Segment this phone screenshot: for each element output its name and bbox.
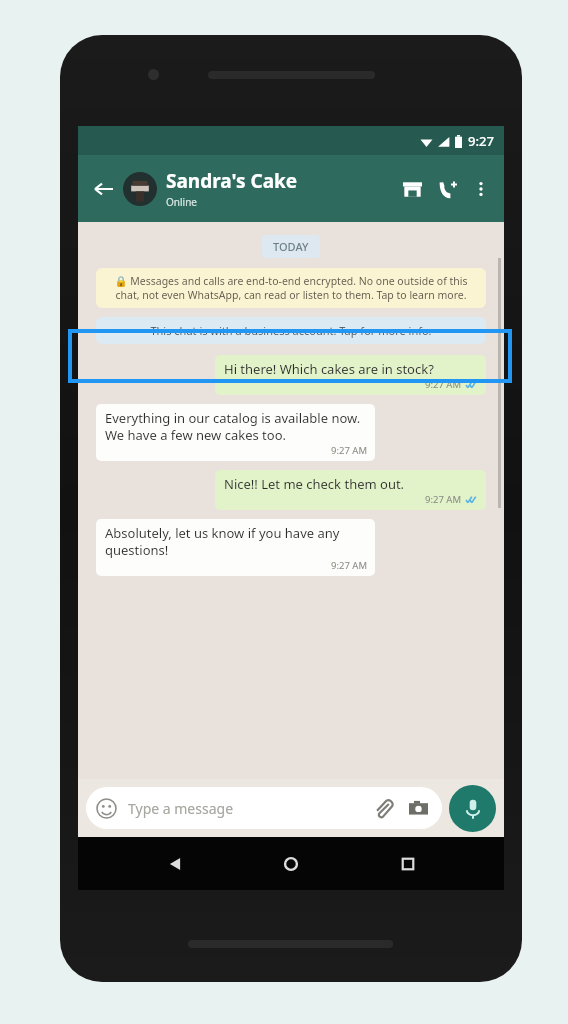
staticText: 9:27 AM xyxy=(425,378,462,391)
staticText: Sandra's Cake xyxy=(166,168,298,194)
staticText: Absolutely, let us know if you have any … xyxy=(105,524,368,559)
button[interactable]: Hi there! Which cakes are in stock? xyxy=(215,355,486,395)
staticText: Everything in our catalog is available n… xyxy=(105,409,368,444)
button[interactable]: Back xyxy=(86,172,120,206)
button[interactable]: Call xyxy=(430,171,466,207)
staticText: 9:27 AM xyxy=(331,559,368,572)
staticText: Type a message xyxy=(128,799,234,818)
button[interactable]: More options xyxy=(466,174,496,204)
staticText: This chat is with a business account. Ta… xyxy=(150,323,432,338)
button[interactable]: Sandra's Cake xyxy=(166,168,394,209)
staticText: 9:27 AM xyxy=(331,444,368,457)
staticText: 🔒 Messages and calls are end-to-end encr… xyxy=(108,274,474,302)
button[interactable]: Voice message xyxy=(449,785,496,832)
button[interactable]: Type a message xyxy=(86,787,442,829)
button[interactable]: Back xyxy=(155,844,195,884)
button[interactable]: Nice!! Let me check them out. xyxy=(215,470,486,510)
button[interactable]: This chat is with a business account. Ta… xyxy=(96,317,486,344)
button[interactable]: Recents xyxy=(388,844,428,884)
staticText: Hi there! Which cakes are in stock? xyxy=(224,360,434,378)
staticText: Online xyxy=(166,195,197,209)
staticText: 9:27 AM xyxy=(425,493,462,506)
button[interactable]: Home xyxy=(271,844,311,884)
staticText: 9:27 xyxy=(468,132,494,150)
button[interactable]: 🔒 Messages and calls are end-to-end encr… xyxy=(96,268,486,308)
button[interactable]: Everything in our catalog is available n… xyxy=(96,404,375,461)
button[interactable]: Catalog xyxy=(394,171,430,207)
button[interactable]: TODAY xyxy=(262,235,320,258)
button[interactable]: Absolutely, let us know if you have any … xyxy=(96,519,375,576)
staticText: TODAY xyxy=(273,239,309,254)
button[interactable]: Profile photo xyxy=(123,172,157,206)
button[interactable]: Attach xyxy=(369,794,397,822)
button[interactable]: Camera xyxy=(404,794,432,822)
staticText: Nice!! Let me check them out. xyxy=(224,475,405,493)
